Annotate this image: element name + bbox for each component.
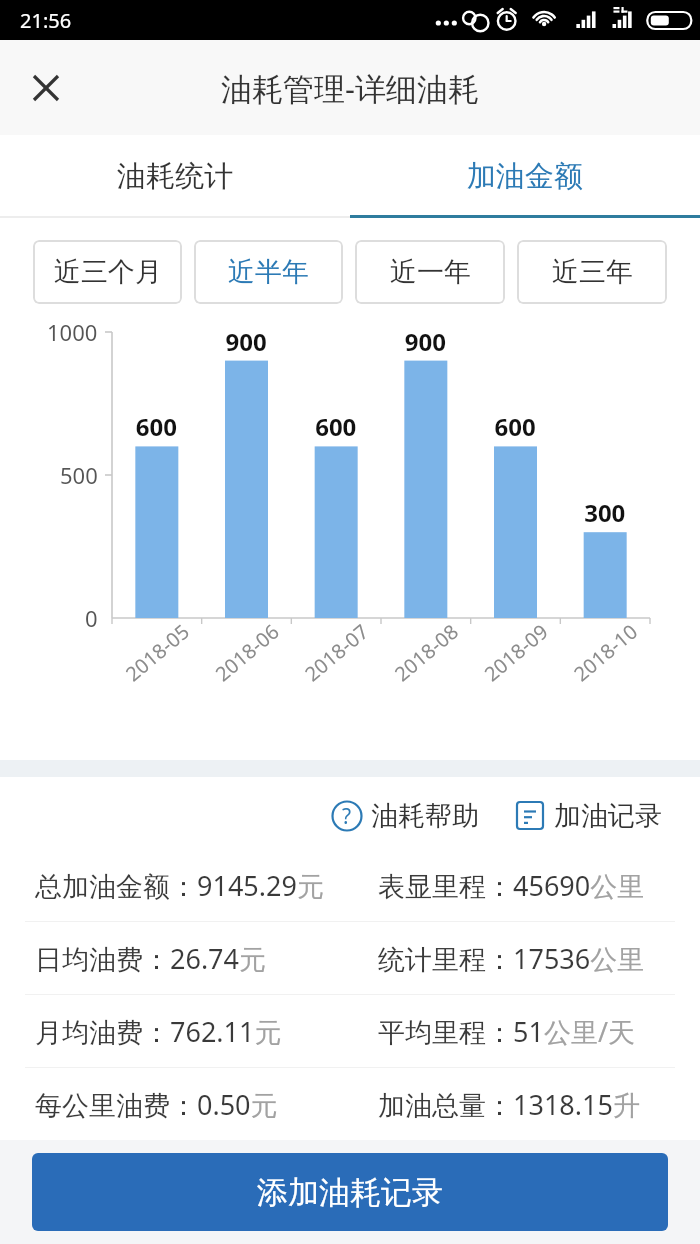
staticText: 统计里程：17536公里 [378, 940, 645, 977]
button[interactable]: 近三个月 [33, 240, 182, 304]
button[interactable]: 加油记录 [511, 795, 666, 837]
staticText: 油耗管理-详细油耗 [221, 67, 479, 109]
staticText: 日均油费：26.74元 [35, 940, 267, 977]
staticText: 表显里程：45690公里 [378, 867, 645, 904]
staticText: 总加油金额：9145.29元 [35, 867, 324, 904]
staticText: 每公里油费：0.50元 [35, 1086, 278, 1123]
staticText: 21:56 [20, 7, 72, 34]
button[interactable]: 油耗统计 [0, 135, 350, 218]
button[interactable]: 近半年 [194, 240, 343, 304]
staticText: ? [342, 802, 352, 831]
staticText: 月均油费：762.11元 [35, 1013, 282, 1050]
button[interactable]: ? [327, 795, 483, 837]
staticText: 添加油耗记录 [257, 1173, 443, 1212]
button[interactable]: 加油金额 [350, 135, 700, 218]
staticText: 加油记录 [554, 799, 662, 833]
staticText: 近三年 [552, 255, 633, 289]
staticText: 加油金额 [467, 158, 583, 195]
staticText: 近一年 [390, 255, 471, 289]
staticText: 平均里程：51公里/天 [378, 1013, 635, 1050]
button[interactable]: Close [14, 56, 78, 120]
staticText: 油耗统计 [117, 158, 233, 195]
button[interactable]: 添加油耗记录 [32, 1153, 668, 1231]
staticText: 加油总量：1318.15升 [378, 1086, 640, 1123]
staticText: 油耗帮助 [371, 799, 479, 833]
staticText: 近三个月 [54, 255, 162, 289]
staticText: 近半年 [228, 255, 309, 289]
button[interactable]: 近三年 [517, 240, 667, 304]
button[interactable]: 近一年 [355, 240, 505, 304]
